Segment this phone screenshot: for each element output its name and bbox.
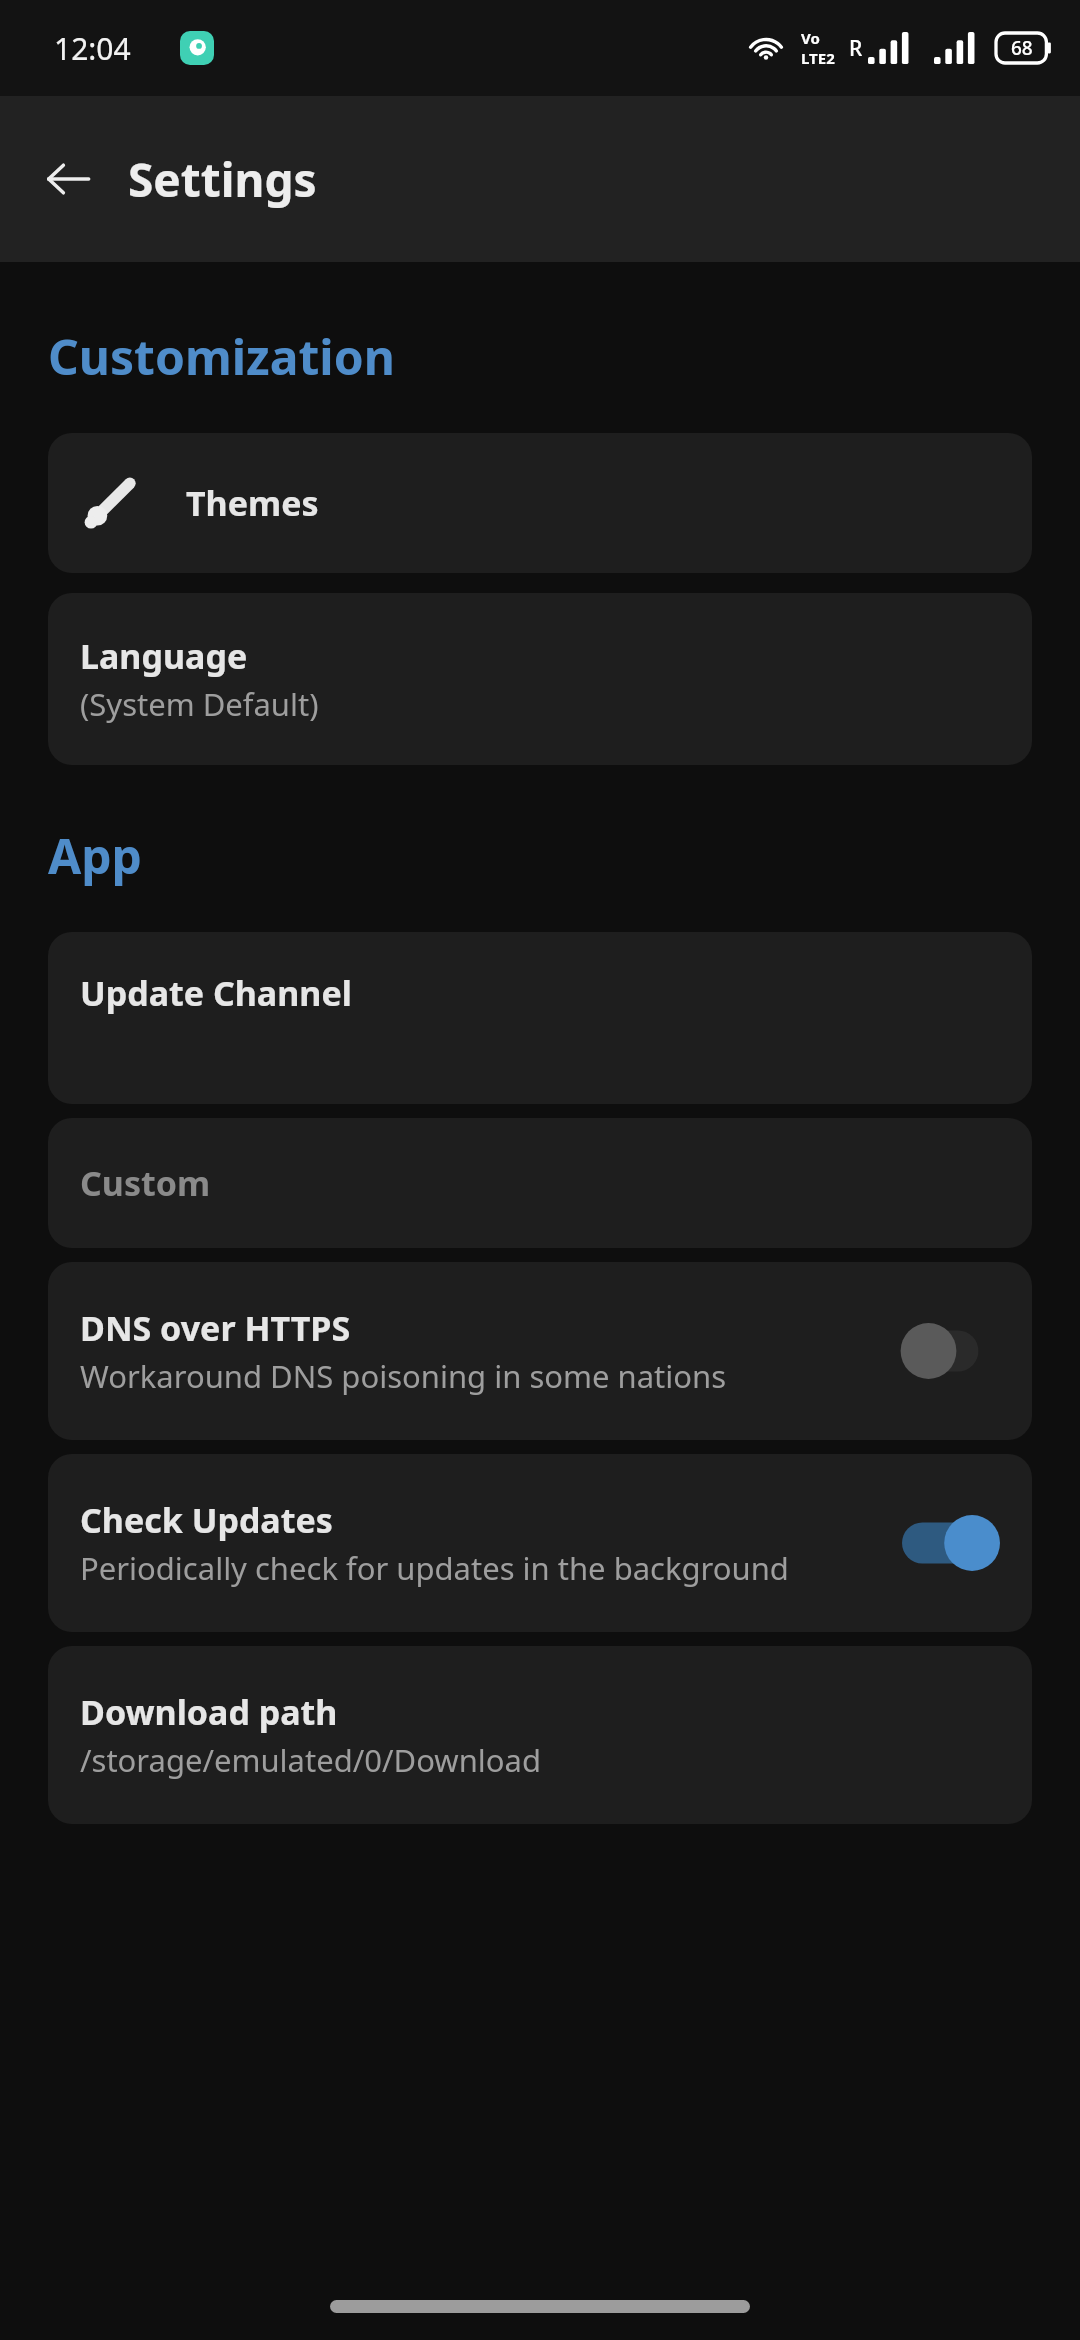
staticText: R bbox=[849, 34, 863, 63]
staticText: Themes bbox=[186, 480, 319, 526]
staticText: Download path bbox=[80, 1689, 338, 1735]
staticText: Custom bbox=[80, 1160, 211, 1206]
staticText: DNS over HTTPS bbox=[80, 1305, 351, 1351]
button[interactable]: Toggle on bbox=[902, 1512, 1000, 1574]
button[interactable]: Toggle off bbox=[902, 1320, 1000, 1382]
staticText: Language bbox=[80, 633, 248, 679]
staticText: Customization bbox=[48, 324, 395, 389]
button[interactable]: Themes bbox=[48, 433, 1032, 573]
staticText: (System Default) bbox=[80, 683, 319, 725]
button[interactable]: Check Updates bbox=[48, 1454, 1032, 1632]
button[interactable]: Back bbox=[30, 141, 106, 217]
staticText: Check Updates bbox=[80, 1497, 333, 1543]
button[interactable]: DNS over HTTPS bbox=[48, 1262, 1032, 1440]
staticText: Vo bbox=[801, 28, 820, 48]
staticText: 68 bbox=[1011, 35, 1033, 61]
staticText: /storage/emulated/0/Download bbox=[80, 1739, 542, 1781]
button[interactable]: Update Channel bbox=[48, 932, 1032, 1104]
button[interactable]: Download path bbox=[48, 1646, 1032, 1824]
button[interactable]: Custom bbox=[48, 1118, 1032, 1248]
staticText: Periodically check for updates in the ba… bbox=[80, 1547, 789, 1589]
button[interactable]: Language bbox=[48, 593, 1032, 765]
staticText: Update Channel bbox=[80, 970, 352, 1016]
staticText: Settings bbox=[128, 148, 317, 211]
staticText: 12:04 bbox=[54, 28, 131, 69]
staticText: Workaround DNS poisoning in some nations bbox=[80, 1355, 727, 1397]
staticText: LTE2 bbox=[801, 48, 835, 68]
staticText: App bbox=[48, 823, 142, 888]
